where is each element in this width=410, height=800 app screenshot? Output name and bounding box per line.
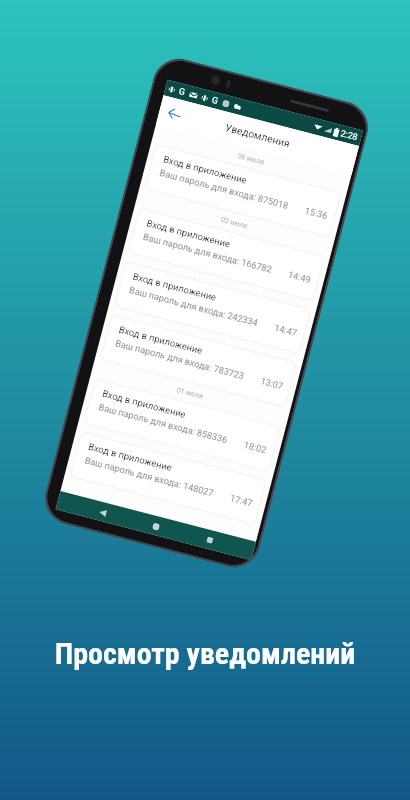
staticText: G: [178, 86, 187, 98]
staticText: 15:36: [304, 205, 329, 221]
staticText: Ваш пароль для входа: 783723: [114, 337, 246, 381]
button[interactable]: Recents: [198, 528, 222, 552]
staticText: Просмотр уведомлений: [0, 636, 410, 671]
staticText: 06 июля: [237, 152, 266, 167]
staticText: 01 июля: [176, 386, 205, 401]
staticText: 14:49: [287, 269, 312, 285]
button[interactable]: Back: [90, 500, 115, 524]
button[interactable]: Back: [161, 100, 188, 127]
staticText: Ваш пароль для входа: 875018: [159, 167, 290, 211]
staticText: Вход в приложение: [162, 153, 248, 186]
button[interactable]: Вход в приложение: [69, 431, 267, 525]
staticText: Вход в приложение: [132, 270, 218, 303]
staticText: 17:47: [229, 492, 254, 508]
staticText: G: [210, 95, 220, 107]
staticText: 13:07: [259, 375, 284, 391]
staticText: Вход в приложение: [145, 217, 231, 249]
button[interactable]: Вход в приложение: [83, 378, 281, 472]
staticText: Ваш пароль для входа: 148027: [84, 454, 215, 498]
button[interactable]: Вход в приложение: [100, 314, 297, 408]
staticText: Ваш пароль для входа: 166782: [142, 231, 273, 275]
staticText: Вход в приложение: [87, 441, 173, 473]
button[interactable]: Вход в приложение: [144, 144, 342, 238]
staticText: 18:02: [243, 439, 268, 455]
staticText: Вход в приложение: [101, 387, 187, 420]
button[interactable]: Вход в приложение: [114, 261, 311, 355]
staticText: Вход в приложение: [118, 324, 204, 356]
staticText: Ваш пароль для входа: 858336: [98, 401, 229, 445]
staticText: Ваш пароль для входа: 242334: [128, 284, 260, 328]
staticText: Уведомления: [224, 121, 292, 149]
staticText: 2:28: [339, 128, 359, 143]
button[interactable]: Home: [143, 514, 168, 538]
button[interactable]: Вход в приложение: [127, 208, 325, 302]
staticText: 02 июля: [220, 216, 249, 231]
staticText: 14:47: [273, 322, 298, 338]
